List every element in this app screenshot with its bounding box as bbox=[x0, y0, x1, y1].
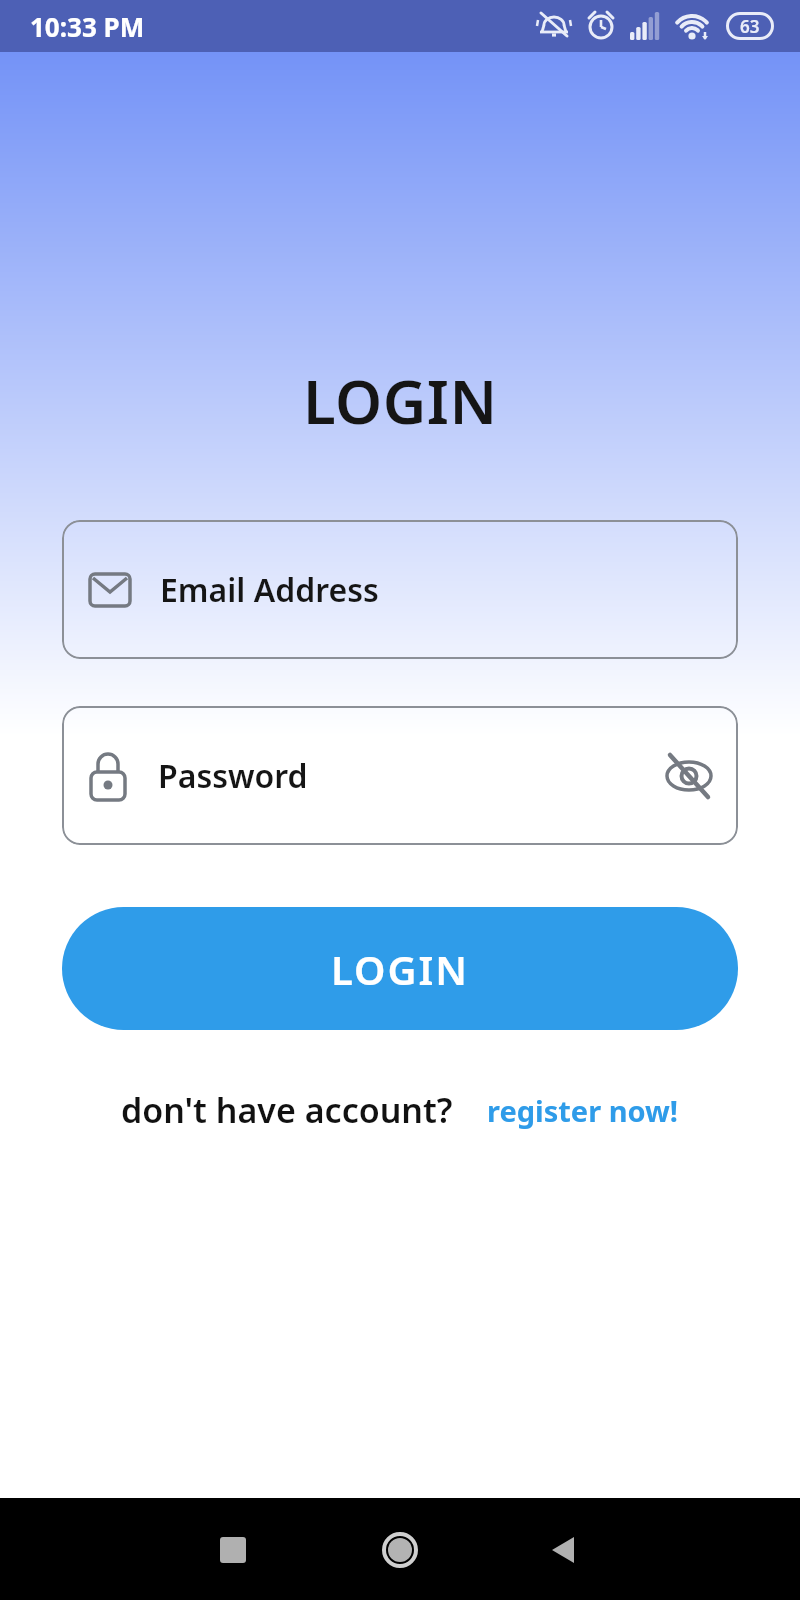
staticText: 10:33 PM bbox=[30, 9, 145, 44]
button[interactable]: LOGIN bbox=[62, 907, 738, 1030]
button[interactable] bbox=[213, 1530, 253, 1570]
staticText: LOGIN bbox=[331, 942, 470, 996]
staticText: don't have account? bbox=[121, 1087, 453, 1133]
staticText: 63 bbox=[740, 15, 760, 38]
button[interactable]: Password bbox=[62, 706, 738, 845]
button[interactable] bbox=[543, 1530, 583, 1570]
staticText: Email Address bbox=[160, 568, 379, 612]
staticText: Password bbox=[158, 754, 308, 798]
button[interactable] bbox=[380, 1530, 420, 1570]
staticText: register now! bbox=[487, 1091, 679, 1130]
button[interactable]: register now! bbox=[487, 1091, 679, 1130]
button[interactable]: Email Address bbox=[62, 520, 738, 659]
staticText: LOGIN bbox=[303, 360, 498, 442]
